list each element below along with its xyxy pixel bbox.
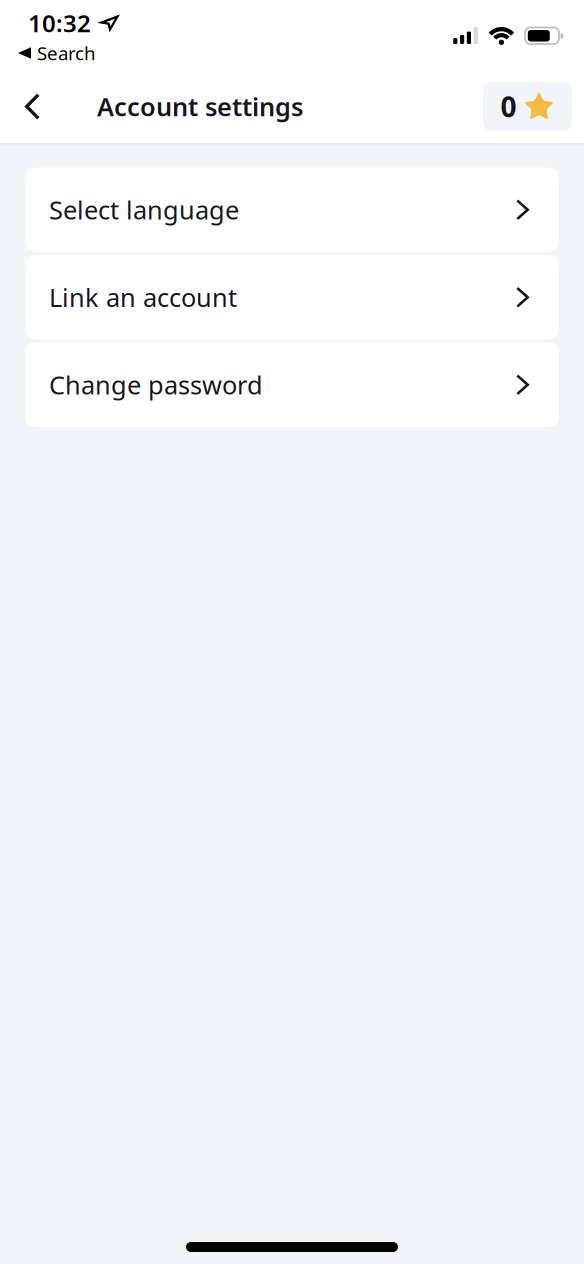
button[interactable]: Change password (25, 342, 559, 427)
staticText: Search (37, 41, 96, 65)
staticText: Link an account (49, 280, 237, 314)
button[interactable]: 0 (483, 82, 572, 131)
button[interactable]: Link an account (25, 255, 559, 339)
staticText: Account settings (97, 90, 303, 123)
staticText: Select language (49, 193, 239, 226)
button[interactable]: Select language (25, 167, 559, 252)
staticText: 10:32 (28, 7, 91, 39)
staticText: Change password (49, 368, 263, 401)
button[interactable]: Back (0, 81, 97, 132)
staticText: 0 (500, 88, 516, 125)
